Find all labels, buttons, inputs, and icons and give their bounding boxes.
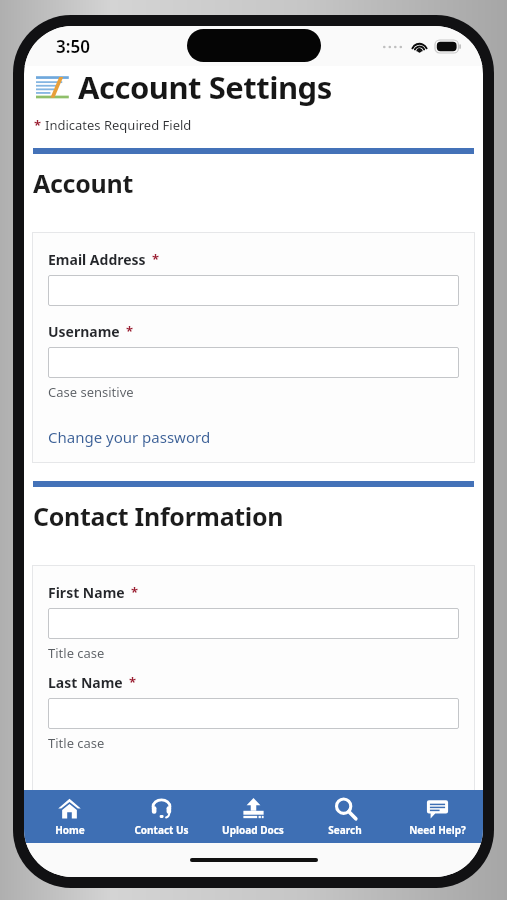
staticText: Search	[328, 823, 362, 837]
staticText: First Name	[48, 583, 125, 602]
staticText: Contact Information	[33, 499, 284, 533]
staticText: Case sensitive	[48, 383, 134, 401]
button[interactable]	[48, 275, 459, 306]
button[interactable]: Change your password	[48, 427, 211, 447]
staticText: *	[34, 116, 42, 134]
staticText: Change your password	[48, 427, 211, 447]
button[interactable]	[48, 608, 459, 639]
staticText: Contact Us	[134, 823, 189, 837]
staticText: Title case	[48, 734, 105, 752]
button[interactable]: Search	[299, 790, 391, 843]
staticText: Upload Docs	[222, 823, 284, 837]
staticText: Last Name	[48, 673, 123, 692]
staticText: Username	[48, 322, 120, 341]
staticText: Account	[33, 166, 133, 200]
staticText: Indicates Required Field	[45, 116, 192, 134]
button[interactable]: Contact Us	[115, 790, 207, 843]
staticText: Title case	[48, 644, 105, 662]
staticText: *	[126, 322, 134, 340]
staticText: Need Help?	[409, 823, 466, 837]
staticText: 3:50	[56, 35, 90, 58]
staticText: Home	[55, 823, 85, 837]
staticText: *	[131, 583, 139, 601]
button[interactable]: Home	[24, 790, 115, 843]
staticText: *	[129, 673, 137, 691]
staticText: *	[152, 250, 160, 268]
staticText: Email Address	[48, 250, 146, 269]
button[interactable]	[48, 347, 459, 378]
button[interactable]: Need Help?	[391, 790, 483, 843]
button[interactable]: Upload Docs	[207, 790, 299, 843]
staticText: Account Settings	[78, 66, 332, 108]
button[interactable]	[48, 698, 459, 729]
